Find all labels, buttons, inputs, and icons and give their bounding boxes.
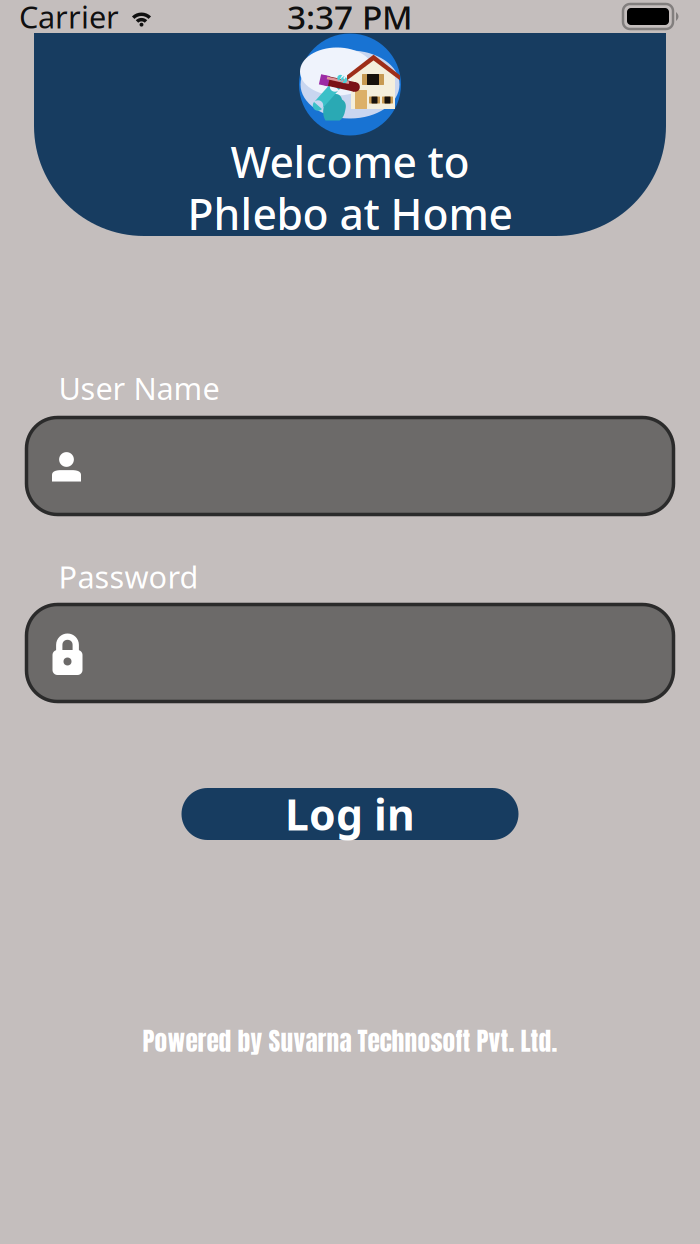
- staticText: Welcome to: [230, 133, 469, 190]
- staticText: Phlebo at Home: [187, 185, 512, 242]
- button[interactable]: [26, 604, 673, 701]
- staticText: Password: [58, 556, 198, 597]
- staticText: Carrier: [19, 0, 119, 37]
- staticText: User Name: [58, 368, 219, 408]
- staticText: 3:37 PM: [287, 0, 413, 39]
- button[interactable]: Log in: [181, 788, 518, 840]
- staticText: Powered by Suvarna Technosoft Pvt. Ltd.: [142, 1022, 557, 1060]
- button[interactable]: [26, 417, 673, 514]
- staticText: Log in: [285, 786, 415, 842]
